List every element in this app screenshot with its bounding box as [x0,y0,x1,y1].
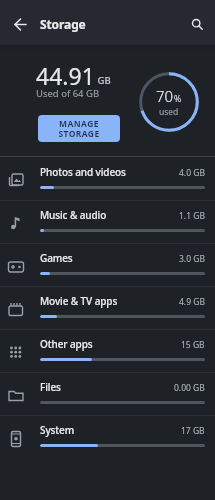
button[interactable]: Other apps [0,329,215,372]
staticText: MANAGE STORAGE [58,118,100,140]
staticText: Movie & TV apps [40,294,118,308]
staticText: 3.0 GB [179,253,205,265]
staticText: Music & audio [40,208,107,222]
staticText: 4.9 GB [179,296,205,308]
button[interactable]: Files [0,372,215,415]
button[interactable]: Photos and videos [0,157,215,200]
button[interactable]: Games [0,243,215,286]
staticText: 15 GB [181,339,205,351]
button[interactable]: System [0,415,215,458]
button[interactable]: Music & audio [0,200,215,243]
staticText: Files [40,380,61,394]
staticText: GB [95,74,111,87]
staticText: 44.91 [36,60,95,91]
staticText: System [40,423,75,437]
button[interactable] [6,10,35,39]
staticText: 4.0 GB [179,167,205,179]
staticText: used [159,106,179,118]
staticText: % [174,92,182,104]
staticText: Storage [40,16,86,32]
staticText: 1.1 GB [179,210,205,222]
button[interactable] [182,9,211,38]
staticText: 17 GB [181,425,205,437]
staticText: Photos and videos [40,165,126,179]
staticText: Used of 64 GB [36,87,100,100]
staticText: Games [40,251,73,265]
staticText: Other apps [40,337,93,351]
staticText: 0.00 GB [174,382,205,394]
staticText: 70 [156,86,174,106]
button[interactable]: MANAGE STORAGE [38,115,120,142]
button[interactable]: Movie & TV apps [0,286,215,329]
